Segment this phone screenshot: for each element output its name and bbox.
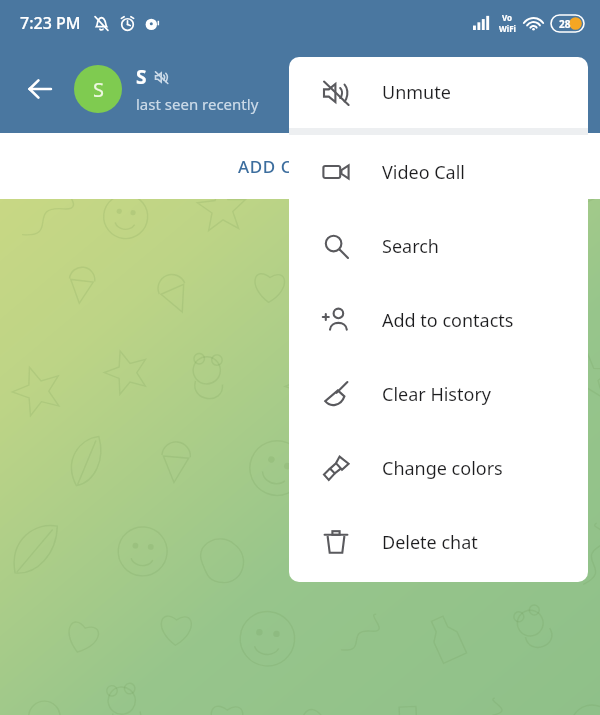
- button[interactable]: Delete chat: [289, 505, 588, 579]
- button[interactable]: S: [136, 64, 592, 114]
- staticText: Delete chat: [382, 530, 478, 555]
- button[interactable]: ADD CONTACT: [0, 133, 600, 199]
- button[interactable]: Change colors: [289, 431, 588, 505]
- staticText: WiFi: [499, 23, 516, 34]
- staticText: 28: [559, 17, 571, 31]
- staticText: Unmute: [382, 80, 451, 105]
- button[interactable]: Unmute: [289, 57, 588, 128]
- staticText: S: [93, 76, 104, 103]
- staticText: Search: [382, 234, 439, 259]
- staticText: 7:23 PM: [20, 12, 81, 34]
- staticText: Add to contacts: [382, 308, 514, 333]
- button[interactable]: Add to contacts: [289, 283, 588, 357]
- staticText: Clear History: [382, 382, 491, 407]
- staticText: ADD CONTACT: [238, 155, 362, 178]
- button[interactable]: Search: [289, 209, 588, 283]
- button[interactable]: Back: [14, 63, 66, 115]
- button[interactable]: S: [74, 65, 122, 113]
- staticText: Change colors: [382, 456, 503, 481]
- staticText: Vo: [502, 12, 513, 23]
- staticText: S: [136, 64, 147, 90]
- staticText: Video Call: [382, 160, 465, 185]
- button[interactable]: Clear History: [289, 357, 588, 431]
- button[interactable]: Video Call: [289, 135, 588, 209]
- staticText: last seen recently: [136, 94, 259, 114]
